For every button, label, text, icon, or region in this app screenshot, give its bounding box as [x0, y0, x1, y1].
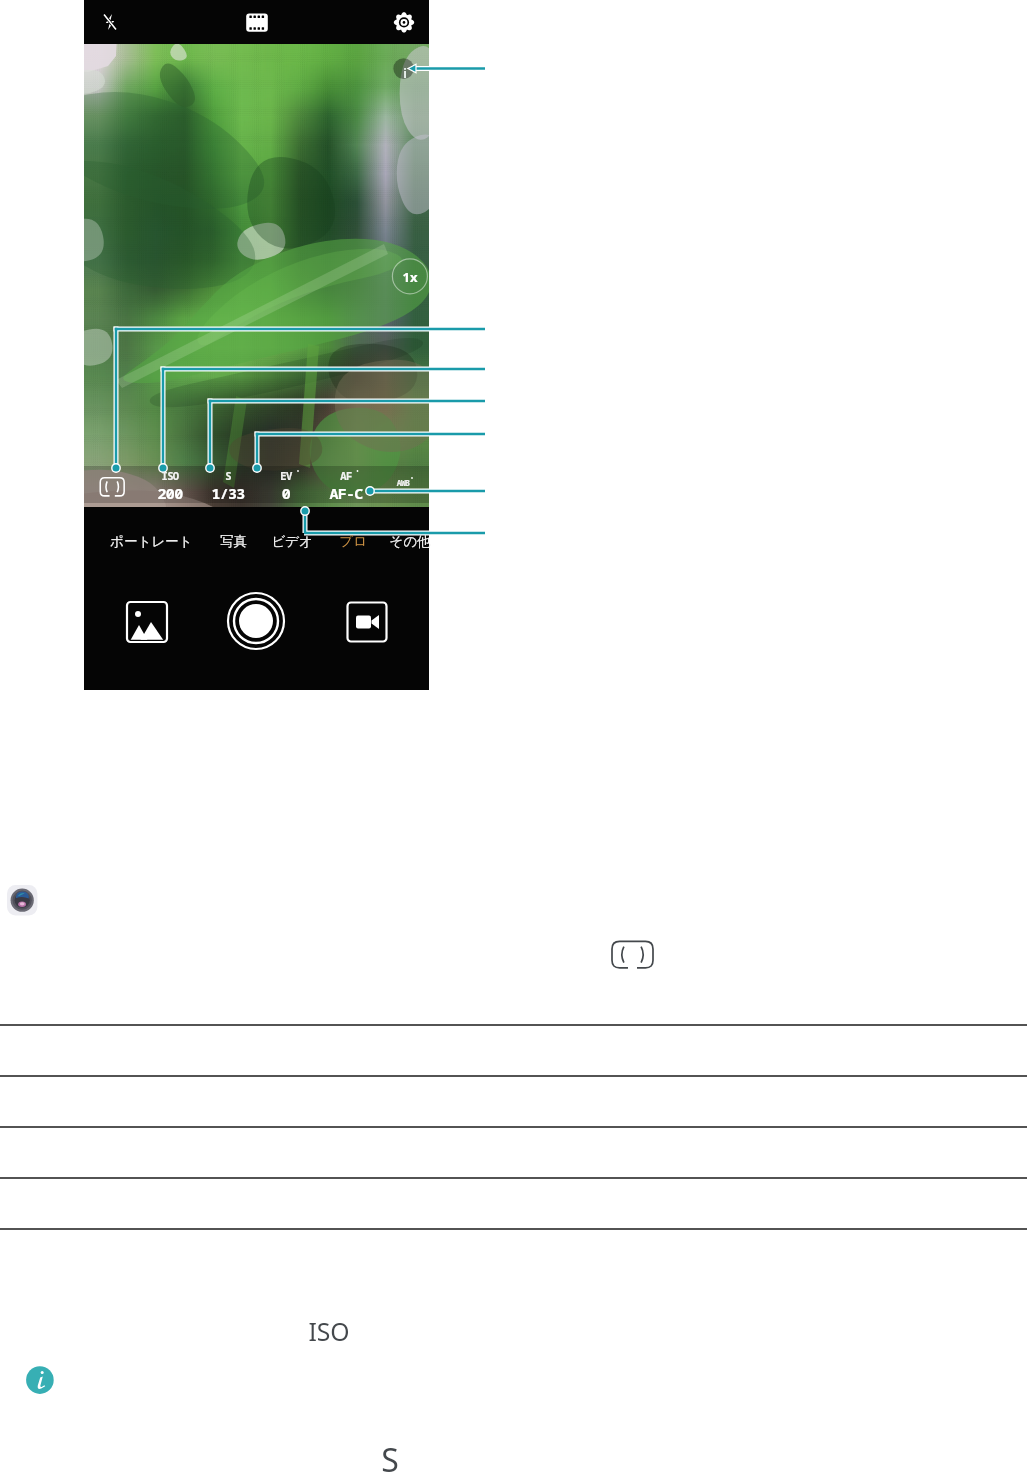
staticText: ISO: [259, 1315, 399, 1349]
staticText: S: [200, 469, 256, 483]
staticText: 1/33: [200, 483, 256, 503]
button[interactable]: Settings: [386, 6, 422, 40]
staticText: 200: [142, 483, 198, 503]
button[interactable]: S: [200, 466, 256, 503]
staticText: ポートレート: [110, 533, 193, 550]
staticText: 0: [258, 483, 314, 503]
button[interactable]: 写真: [213, 528, 253, 554]
staticText: ビデオ: [271, 533, 313, 550]
button[interactable]: ポートレート: [104, 528, 198, 554]
button[interactable]: Video mode: [239, 6, 275, 40]
button[interactable]: その他: [384, 528, 436, 554]
staticText: EV: [258, 469, 314, 483]
button[interactable]: Pro mode info: [393, 58, 415, 80]
staticText: AF-C: [318, 483, 374, 503]
button[interactable]: ビデオ: [266, 528, 318, 554]
staticText: ISO: [142, 469, 198, 483]
staticText: AWB: [373, 477, 433, 488]
button[interactable]: Flash off: [92, 6, 128, 40]
button[interactable]: ISO: [142, 466, 198, 503]
staticText: プロ: [339, 533, 367, 550]
staticText: その他: [389, 533, 431, 550]
button[interactable]: Record video: [347, 602, 387, 642]
button[interactable]: EV: [258, 466, 314, 503]
button[interactable]: プロ: [333, 528, 373, 554]
button[interactable]: AF: [318, 466, 374, 503]
staticText: i: [390, 65, 420, 81]
staticText: 1x: [390, 268, 430, 286]
button[interactable]: Zoom 1x: [392, 259, 428, 295]
staticText: 写真: [220, 533, 247, 550]
staticText: S: [320, 1438, 460, 1476]
button[interactable]: Shutter: [228, 593, 284, 649]
staticText: AF: [318, 469, 374, 483]
button[interactable]: Gallery: [127, 602, 167, 642]
